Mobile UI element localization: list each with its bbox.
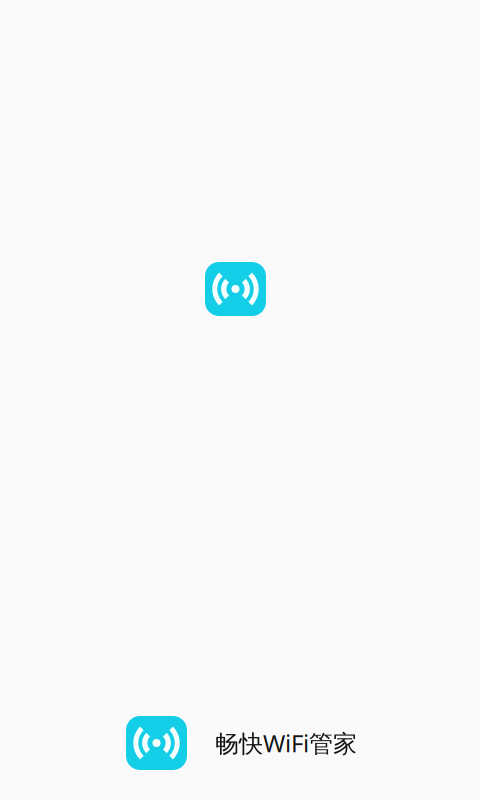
staticText: 畅快WiFi管家 [215, 727, 357, 759]
button[interactable]: 畅快WiFi管家 [126, 716, 357, 770]
